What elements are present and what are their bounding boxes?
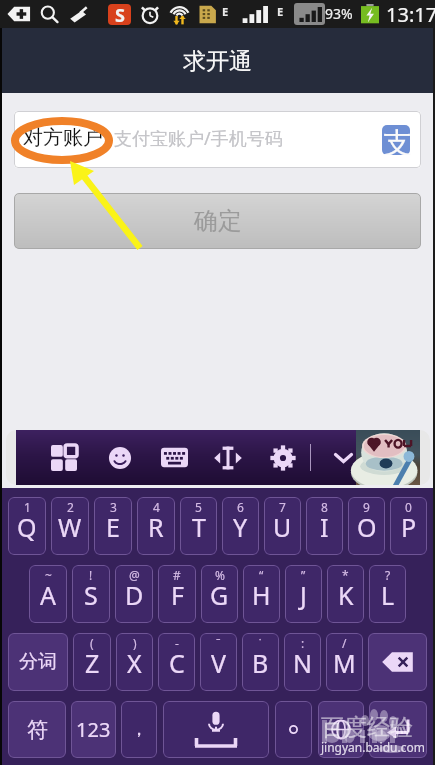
- button[interactable]: ˙: [242, 633, 279, 691]
- staticText: (: [90, 635, 94, 651]
- staticText: 8: [321, 499, 328, 515]
- staticText: “: [259, 567, 264, 583]
- staticText: ˙: [259, 635, 262, 651]
- staticText: E: [106, 510, 120, 544]
- staticText: O: [357, 510, 377, 544]
- staticText: @: [129, 567, 140, 583]
- staticText: E: [222, 4, 229, 19]
- button[interactable]: 支付宝账户/手机号码: [14, 111, 421, 168]
- staticText: N: [293, 646, 313, 680]
- button[interactable]: ，: [121, 701, 157, 758]
- button[interactable]: Theme preview: [356, 430, 420, 485]
- staticText: 符: [27, 717, 48, 743]
- staticText: 百度经验: [321, 713, 413, 742]
- button[interactable]: 4: [137, 497, 175, 555]
- button[interactable]: ˉ: [200, 633, 237, 691]
- button[interactable]: ~: [29, 565, 67, 623]
- staticText: C: [169, 646, 185, 680]
- staticText: 7: [279, 499, 286, 515]
- button[interactable]: 9: [348, 497, 385, 555]
- staticText: 5: [195, 499, 202, 515]
- staticText: A: [40, 578, 56, 612]
- staticText: R: [148, 510, 164, 544]
- staticText: D: [125, 578, 144, 612]
- staticText: G: [210, 578, 229, 612]
- staticText: 求开通: [183, 47, 252, 76]
- staticText: 分词: [19, 650, 57, 674]
- staticText: 支: [383, 125, 411, 155]
- button[interactable]: “: [243, 565, 280, 623]
- staticText: :: [301, 635, 305, 651]
- staticText: 2: [67, 499, 74, 515]
- staticText: ”: [301, 567, 306, 583]
- button[interactable]: 1: [8, 497, 46, 555]
- staticText: Y: [233, 510, 248, 544]
- staticText: 1: [24, 499, 31, 515]
- button[interactable]: 确定: [14, 193, 421, 249]
- staticText: W: [58, 510, 82, 544]
- staticText: F: [171, 578, 184, 612]
- button[interactable]: 3: [94, 497, 132, 555]
- button[interactable]: (: [73, 633, 111, 691]
- staticText: S: [84, 578, 98, 612]
- staticText: T: [192, 510, 206, 544]
- button[interactable]: Collapse: [326, 430, 361, 485]
- button[interactable]: space: [163, 701, 269, 758]
- button[interactable]: !: [72, 565, 110, 623]
- staticText: S: [115, 4, 125, 24]
- staticText: 123: [76, 716, 111, 743]
- staticText: 6: [237, 499, 244, 515]
- staticText: 13:17: [386, 1, 435, 28]
- button[interactable]: ”: [285, 565, 322, 623]
- staticText: Q: [17, 510, 37, 544]
- button[interactable]: back: [368, 633, 427, 691]
- button[interactable]: 6: [222, 497, 259, 555]
- staticText: 4: [153, 499, 160, 515]
- staticText: *: [342, 567, 349, 583]
- staticText: /: [342, 635, 347, 651]
- button[interactable]: *: [327, 565, 364, 623]
- button[interactable]: ?: [369, 565, 406, 623]
- button[interactable]: :: [284, 633, 321, 691]
- button[interactable]: %: [201, 565, 238, 623]
- staticText: ，: [130, 718, 148, 741]
- staticText: jingyan.baidu.com: [321, 739, 425, 755]
- button[interactable]: ): [116, 633, 153, 691]
- button[interactable]: 符: [8, 701, 66, 758]
- staticText: !: [89, 567, 93, 583]
- button[interactable]: 0: [390, 497, 427, 555]
- button[interactable]: Keyboard: [156, 430, 193, 485]
- staticText: Z: [85, 646, 100, 680]
- button[interactable]: globe: [318, 701, 364, 758]
- staticText: ?: [385, 567, 391, 583]
- staticText: #: [173, 567, 181, 583]
- staticText: B: [252, 646, 269, 680]
- button[interactable]: 8: [306, 497, 343, 555]
- staticText: E: [277, 4, 284, 19]
- button[interactable]: 分词: [8, 633, 68, 691]
- staticText: 3: [110, 499, 117, 515]
- button[interactable]: 5: [180, 497, 217, 555]
- button[interactable]: #: [158, 565, 196, 623]
- button[interactable]: /: [326, 633, 363, 691]
- staticText: 0: [405, 499, 412, 515]
- staticText: 93%: [325, 4, 353, 23]
- button[interactable]: enter: [369, 701, 427, 758]
- button[interactable]: Apps: [46, 430, 82, 485]
- staticText: ˉ: [216, 635, 221, 651]
- button[interactable]: 123: [71, 701, 116, 758]
- staticText: M: [333, 646, 356, 680]
- staticText: U: [273, 510, 292, 544]
- staticText: I: [320, 510, 329, 544]
- button[interactable]: 2: [51, 497, 89, 555]
- button[interactable]: 7: [264, 497, 301, 555]
- staticText: H: [252, 578, 271, 612]
- button[interactable]: Cursor: [208, 430, 248, 485]
- button[interactable]: @: [115, 565, 153, 623]
- button[interactable]: period: [275, 701, 312, 758]
- button[interactable]: -: [158, 633, 195, 691]
- button[interactable]: Settings: [265, 430, 301, 485]
- staticText: V: [211, 646, 227, 680]
- staticText: P: [401, 510, 417, 544]
- button[interactable]: Emoji: [103, 430, 137, 485]
